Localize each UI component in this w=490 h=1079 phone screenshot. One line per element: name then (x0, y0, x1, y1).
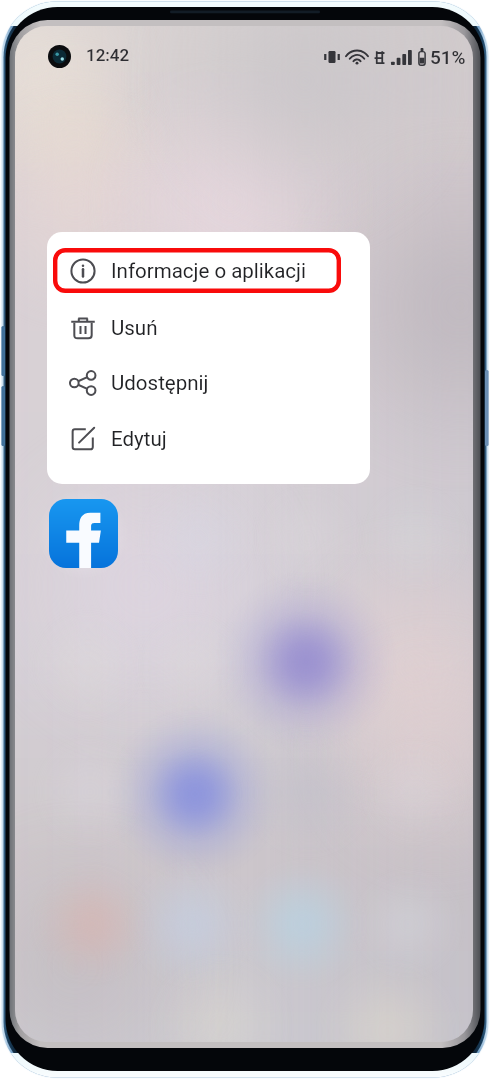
button[interactable]: Udostępnij (53, 360, 341, 405)
staticText: Informacje o aplikacji (111, 259, 306, 283)
staticText: Edytuj (111, 427, 167, 451)
staticText: 12:42 (86, 45, 130, 65)
button[interactable]: Edytuj (53, 416, 341, 461)
button[interactable]: Facebook (49, 499, 118, 568)
button[interactable]: Informacje o aplikacji (53, 248, 341, 293)
staticText: Udostępnij (111, 371, 209, 395)
staticText: Usuń (111, 316, 158, 340)
staticText: 51% (430, 46, 466, 68)
button[interactable]: Usuń (53, 305, 341, 350)
